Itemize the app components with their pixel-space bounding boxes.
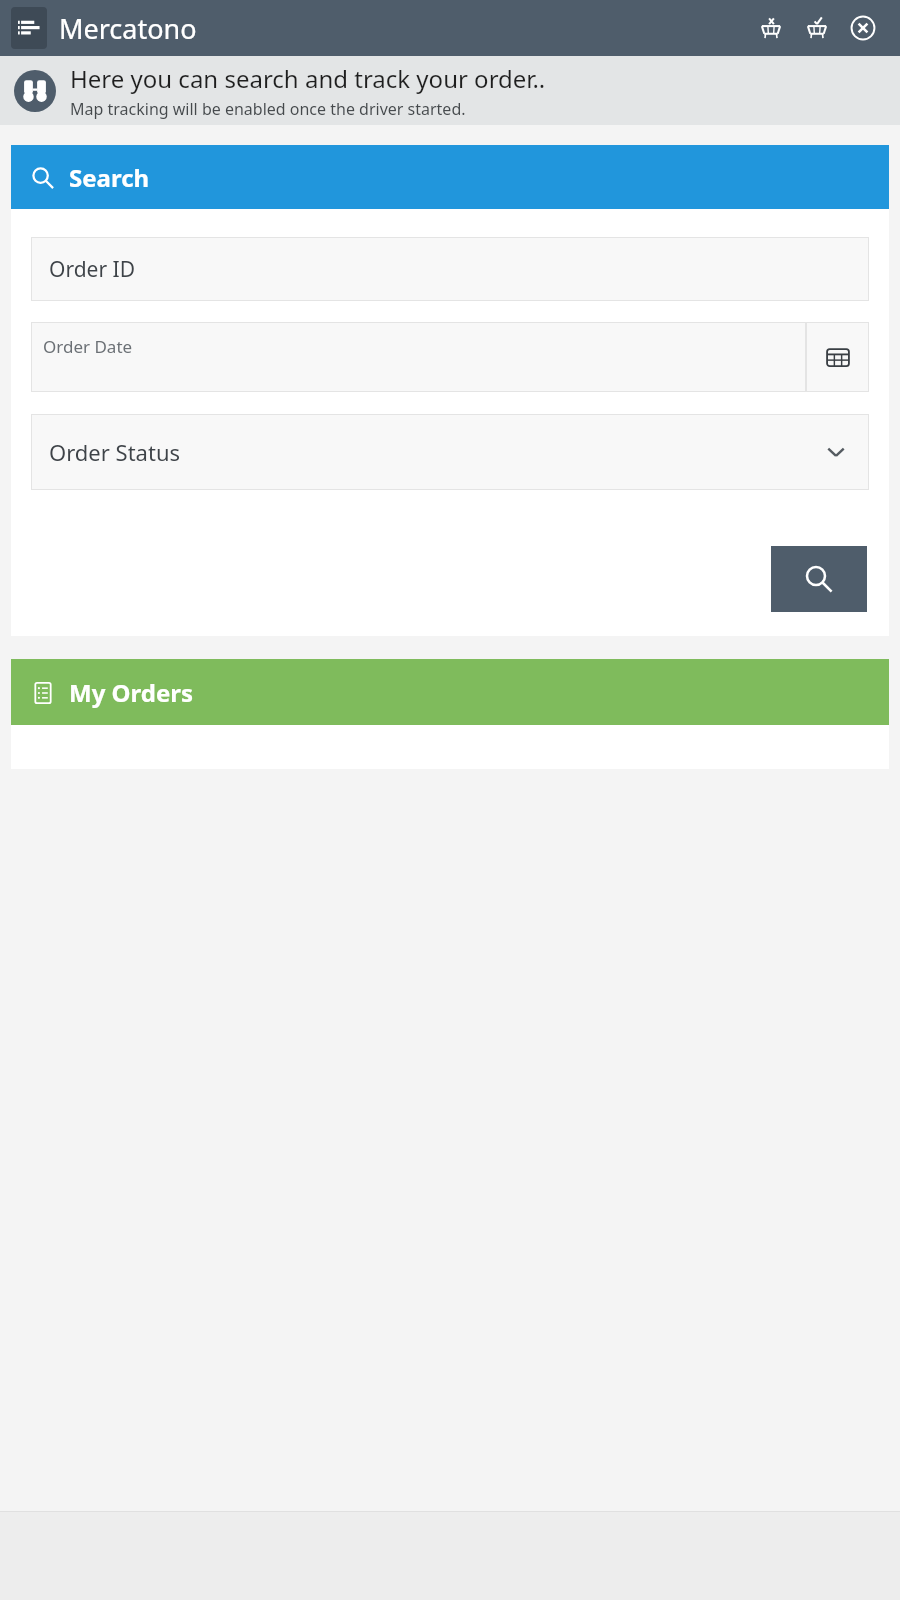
button[interactable]: Close bbox=[840, 5, 886, 51]
button[interactable]: Pick date bbox=[806, 322, 869, 392]
button[interactable]: Order Date bbox=[31, 322, 806, 392]
staticText: Here you can search and track your order… bbox=[70, 62, 546, 95]
staticText: Mercatono bbox=[59, 10, 197, 47]
staticText: My Orders bbox=[69, 676, 194, 709]
button[interactable]: My Orders bbox=[11, 659, 889, 725]
button[interactable]: Menu bbox=[11, 7, 47, 49]
button[interactable]: Order Status bbox=[31, 414, 869, 490]
button[interactable]: Search orders bbox=[771, 546, 867, 612]
button[interactable]: Search bbox=[11, 145, 889, 209]
staticText: Order Date bbox=[43, 335, 133, 358]
button[interactable]: Order ID bbox=[31, 237, 869, 301]
staticText: Order ID bbox=[49, 255, 135, 284]
button[interactable]: Completed orders bbox=[794, 5, 840, 51]
staticText: Search bbox=[69, 161, 150, 194]
button[interactable]: Cancelled orders bbox=[748, 5, 794, 51]
staticText: Map tracking will be enabled once the dr… bbox=[70, 98, 466, 120]
staticText: Order Status bbox=[49, 437, 181, 467]
